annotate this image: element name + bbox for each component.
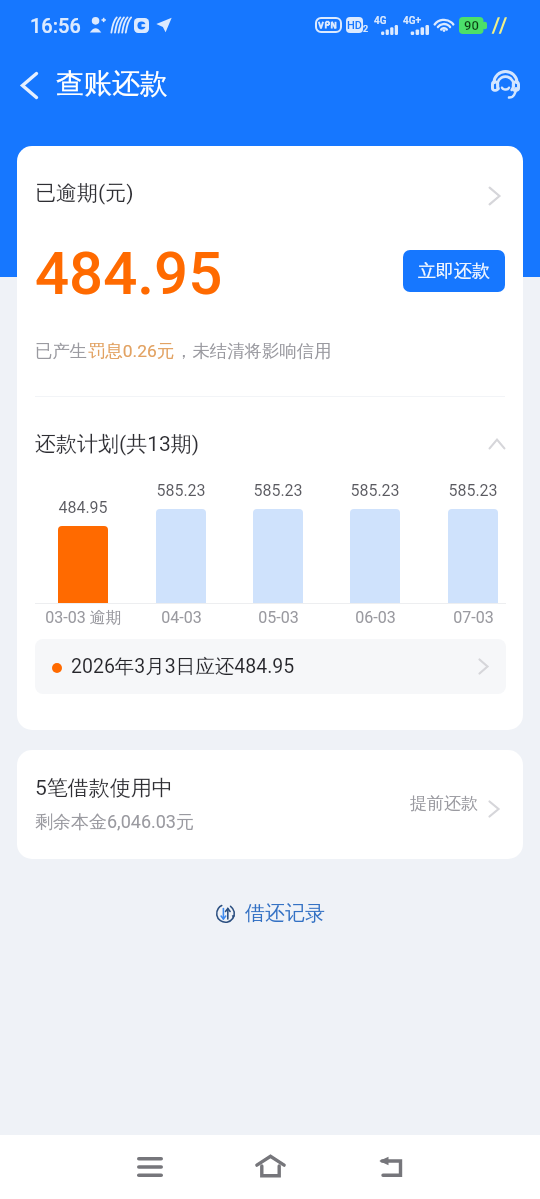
staticText: 4G: [374, 15, 387, 27]
button[interactable]: 5笔借款使用中: [17, 750, 523, 859]
staticText: 04-03: [161, 608, 202, 627]
button[interactable]: 最近任务: [118, 1135, 182, 1199]
staticText: 已逾期(元): [35, 180, 134, 206]
staticText: 立即还款: [418, 260, 490, 283]
staticText: 06-03: [355, 608, 396, 627]
staticText: 查账还款: [56, 66, 168, 101]
staticText: HD: [347, 19, 363, 32]
staticText: 剩余本金6,046.03元: [35, 811, 194, 834]
staticText: 已产生: [35, 340, 88, 362]
staticText: 提前还款: [410, 793, 478, 814]
staticText: 484.95: [58, 498, 108, 517]
button[interactable]: 借还记录: [205, 895, 335, 932]
button[interactable]: 在线客服: [483, 62, 528, 107]
button[interactable]: 主页: [238, 1135, 302, 1197]
staticText: ，未结清将影响信用: [175, 340, 332, 362]
staticText: 2: [363, 24, 369, 35]
staticText: 05-03: [258, 608, 299, 627]
staticText: 585.23: [448, 481, 498, 500]
staticText: 585.23: [253, 481, 303, 500]
staticText: 4G+: [403, 15, 422, 27]
staticText: 484.95: [35, 238, 223, 308]
staticText: 借还记录: [245, 901, 325, 926]
button[interactable]: 立即还款: [403, 250, 505, 292]
button[interactable]: 返回: [7, 63, 51, 107]
staticText: 07-03: [453, 608, 494, 627]
staticText: 585.23: [156, 481, 206, 500]
staticText: 2026年3月3日应还484.95: [71, 654, 295, 679]
staticText: 03-03 逾期: [45, 608, 122, 628]
button[interactable]: 2026年3月3日应还484.95: [35, 639, 506, 694]
staticText: 5笔借款使用中: [35, 775, 173, 801]
button[interactable]: 返回: [358, 1135, 422, 1198]
staticText: 585.23: [350, 481, 400, 500]
staticText: 16:56: [30, 14, 81, 37]
staticText: 罚息0.26元: [88, 340, 175, 362]
button[interactable]: 已逾期(元): [17, 146, 523, 224]
button[interactable]: 还款计划(共13期): [17, 397, 523, 457]
staticText: 还款计划(共13期): [35, 431, 200, 457]
staticText: 90: [464, 18, 479, 33]
